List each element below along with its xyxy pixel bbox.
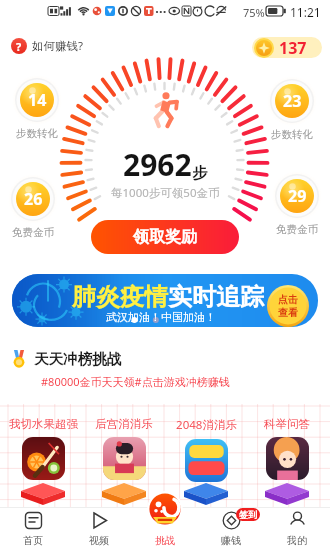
- staticText: 步: [192, 164, 207, 183]
- staticText: 26: [24, 188, 43, 210]
- staticText: 查看: [278, 306, 298, 319]
- staticText: 肺炎疫情: [72, 282, 168, 312]
- staticText: 武汉加油！中国加油！: [106, 310, 216, 324]
- staticText: 每1000步可领50金币: [111, 185, 220, 201]
- staticText: 2962: [123, 144, 192, 185]
- button[interactable]: 科举问答: [248, 417, 326, 480]
- staticText: 天天冲榜挑战: [34, 350, 121, 368]
- staticText: 137: [279, 37, 307, 58]
- staticText: #80000金币天天领#点击游戏冲榜赚钱: [41, 374, 230, 389]
- staticText: 如何赚钱?: [32, 38, 83, 54]
- staticText: 挑战: [155, 534, 175, 547]
- staticText: 29: [288, 185, 307, 207]
- button[interactable]: 我的: [264, 508, 330, 550]
- staticText: 75%: [243, 5, 265, 20]
- button[interactable]: 14: [12, 75, 62, 140]
- staticText: 首页: [23, 534, 43, 547]
- button[interactable]: 23: [267, 76, 317, 141]
- staticText: ?: [16, 39, 22, 54]
- staticText: 我的: [287, 534, 307, 547]
- button[interactable]: 后宫消消乐: [85, 417, 163, 480]
- staticText: 23: [283, 90, 302, 112]
- staticText: 11:21: [290, 4, 321, 20]
- button[interactable]: 挑战: [132, 508, 198, 550]
- button[interactable]: 首页: [0, 508, 66, 550]
- staticText: 免费金币: [276, 223, 318, 236]
- button[interactable]: 26: [8, 174, 58, 239]
- button[interactable]: ?: [8, 35, 86, 57]
- staticText: 14: [28, 89, 47, 111]
- button[interactable]: 29: [272, 171, 322, 236]
- staticText: 步数转化: [271, 128, 313, 141]
- staticText: 点击: [278, 293, 298, 306]
- button[interactable]: 肺炎疫情: [12, 274, 318, 327]
- staticText: 视频: [89, 534, 109, 547]
- staticText: 我切水果超强: [9, 417, 78, 431]
- staticText: 后宫消消乐: [95, 417, 153, 431]
- staticText: 赚钱: [221, 534, 241, 547]
- button[interactable]: 137: [252, 37, 322, 58]
- staticText: 步数转化: [16, 127, 58, 140]
- staticText: 科举问答: [264, 417, 310, 431]
- staticText: 领取奖励: [133, 227, 197, 247]
- button[interactable]: 挑战: [147, 491, 183, 527]
- button[interactable]: 2048消消乐: [167, 417, 245, 482]
- button[interactable]: 领取奖励: [91, 220, 239, 254]
- button[interactable]: 视频: [66, 508, 132, 550]
- button[interactable]: 我切水果超强: [4, 417, 82, 480]
- staticText: 2048消消乐: [176, 417, 237, 433]
- button[interactable]: 天天冲榜挑战: [8, 348, 123, 370]
- staticText: 实时追踪: [168, 282, 264, 312]
- staticText: 签到: [239, 509, 257, 520]
- button[interactable]: 点击: [267, 285, 309, 327]
- button[interactable]: 赚钱: [198, 508, 264, 550]
- staticText: 免费金币: [12, 226, 54, 239]
